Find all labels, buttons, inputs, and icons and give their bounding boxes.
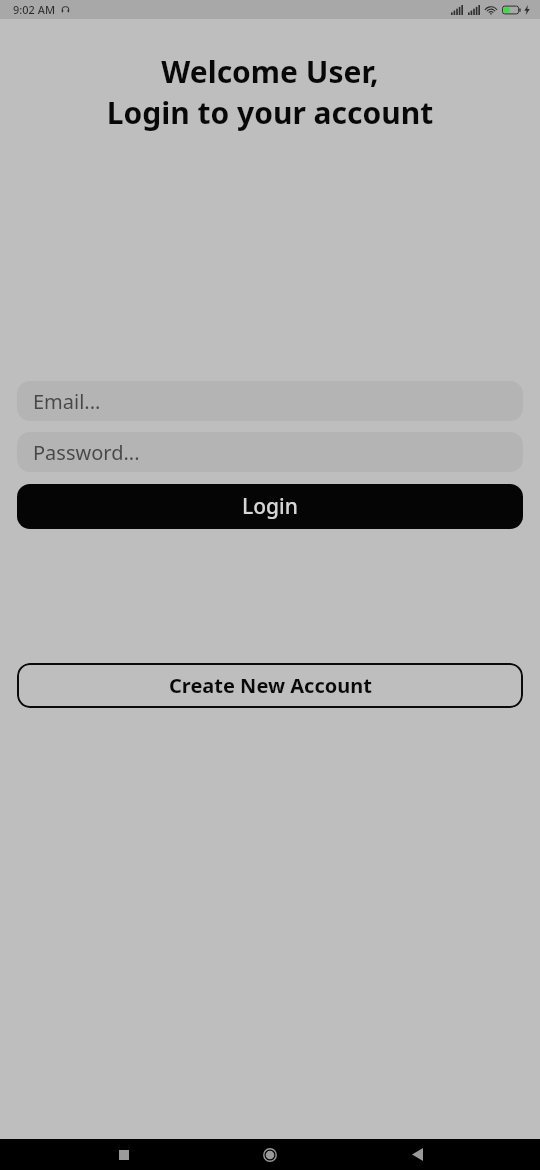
- button[interactable]: Login: [17, 484, 523, 529]
- staticText: Login: [242, 492, 298, 521]
- button[interactable]: Back: [394, 1139, 440, 1170]
- button[interactable]: Home: [247, 1139, 293, 1170]
- staticText: Create New Account: [169, 672, 372, 699]
- staticText: Password...: [33, 439, 140, 466]
- button[interactable]: Recent apps: [101, 1139, 147, 1170]
- staticText: Email...: [33, 388, 101, 415]
- staticText: Welcome User,: [0, 51, 540, 92]
- button[interactable]: Email...: [17, 381, 523, 421]
- staticText: Login to your account: [0, 92, 540, 133]
- button[interactable]: Password...: [17, 432, 523, 472]
- staticText: 9:02 AM: [13, 2, 56, 17]
- button[interactable]: Create New Account: [17, 663, 523, 708]
